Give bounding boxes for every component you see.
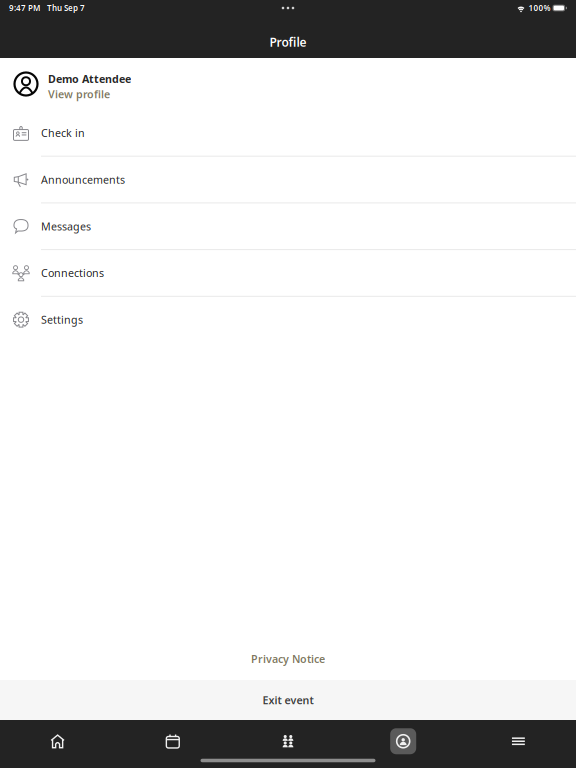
staticText: Connections	[41, 266, 104, 280]
button[interactable]: Attendees	[230, 718, 346, 759]
staticText: Thu Sep 7	[47, 3, 85, 13]
button[interactable]: Home	[0, 718, 115, 759]
button[interactable]: More	[461, 718, 576, 759]
button[interactable]: Connections	[0, 250, 576, 297]
staticText: 9:47 PM	[9, 3, 40, 13]
button[interactable]: Check in	[0, 110, 576, 157]
staticText: 100%	[528, 3, 550, 13]
button[interactable]: Exit event	[0, 680, 576, 720]
staticText: Announcements	[41, 172, 125, 187]
staticText: Check in	[41, 126, 85, 140]
button[interactable]: Announcements	[0, 157, 576, 203]
button[interactable]: Demo Attendee	[0, 58, 576, 110]
staticText: Exit event	[262, 693, 313, 707]
staticText: View profile	[48, 87, 110, 101]
button[interactable]: Settings	[0, 297, 576, 343]
staticText: Demo Attendee	[48, 72, 131, 86]
staticText: Privacy Notice	[251, 652, 325, 666]
staticText: Profile	[269, 34, 306, 50]
button[interactable]: Profile	[346, 718, 461, 759]
button[interactable]: Messages	[0, 203, 576, 250]
staticText: Settings	[41, 313, 83, 327]
button[interactable]: Privacy Notice	[0, 646, 576, 672]
button[interactable]: Schedule	[115, 718, 230, 759]
staticText: Messages	[41, 219, 91, 233]
